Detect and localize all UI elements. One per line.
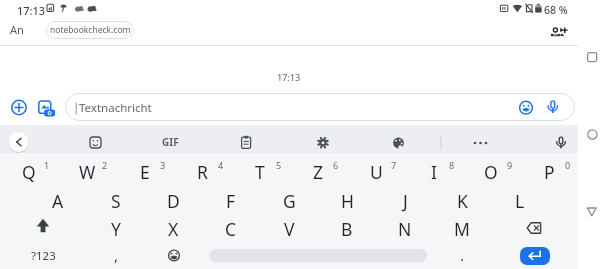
button[interactable]: , xyxy=(101,243,131,267)
staticText: 8 xyxy=(449,159,455,171)
button[interactable]: W xyxy=(59,158,115,185)
staticText: U xyxy=(370,160,383,184)
button[interactable]: C xyxy=(203,215,259,242)
staticText: 68 % xyxy=(544,3,568,17)
button[interactable]: G xyxy=(261,187,317,214)
button[interactable] xyxy=(580,44,606,70)
staticText: K xyxy=(457,189,468,213)
staticText: . xyxy=(460,245,465,265)
button[interactable]: notebookcheck.com xyxy=(46,21,134,39)
staticText: Textnachricht xyxy=(79,100,152,116)
staticText: 17:13 xyxy=(277,71,301,83)
staticText: H xyxy=(341,189,354,213)
button[interactable] xyxy=(540,94,567,121)
button[interactable] xyxy=(549,130,573,154)
button[interactable]: GIF xyxy=(140,131,200,153)
staticText: 3 xyxy=(160,159,166,171)
staticText: R xyxy=(197,160,208,184)
button[interactable] xyxy=(6,94,33,121)
button[interactable]: . xyxy=(447,243,477,267)
staticText: X xyxy=(168,217,179,241)
staticText: Q xyxy=(22,160,36,184)
button[interactable]: J xyxy=(377,187,433,214)
staticText: , xyxy=(114,245,119,265)
button[interactable]: Z xyxy=(290,158,346,185)
button[interactable] xyxy=(520,247,550,265)
staticText: W xyxy=(79,160,96,184)
button[interactable]: I xyxy=(406,158,462,185)
button[interactable]: R xyxy=(174,158,230,185)
staticText: Y xyxy=(111,217,121,241)
staticText: 17:13 xyxy=(17,3,46,18)
button[interactable]: B xyxy=(319,215,375,242)
button[interactable]: S xyxy=(88,187,144,214)
button[interactable] xyxy=(311,130,335,154)
staticText: D xyxy=(167,189,180,213)
button[interactable]: V xyxy=(261,215,317,242)
button[interactable]: ?123 xyxy=(20,244,66,268)
staticText: GIF xyxy=(162,135,179,149)
staticText: V xyxy=(284,217,295,241)
button[interactable]: Y xyxy=(88,215,144,242)
button[interactable]: M xyxy=(434,215,490,242)
staticText: J xyxy=(403,189,408,213)
staticText: 2 xyxy=(102,159,108,171)
staticText: L xyxy=(515,189,525,213)
staticText: 7 xyxy=(391,159,397,171)
staticText: notebookcheck.com xyxy=(50,24,131,36)
staticText: F xyxy=(226,189,236,213)
button[interactable]: L xyxy=(492,187,548,214)
button[interactable] xyxy=(387,130,411,154)
button[interactable] xyxy=(32,94,59,121)
staticText: 9 xyxy=(507,159,513,171)
button[interactable] xyxy=(65,93,575,121)
button[interactable] xyxy=(511,214,557,241)
button[interactable] xyxy=(234,130,258,154)
button[interactable]: K xyxy=(434,187,490,214)
button[interactable]: Q xyxy=(1,158,57,185)
staticText: I xyxy=(431,160,437,184)
staticText: ?123 xyxy=(31,248,56,264)
staticText: 0 xyxy=(565,159,571,171)
button[interactable] xyxy=(6,130,31,154)
staticText: M xyxy=(454,217,470,241)
button[interactable]: X xyxy=(145,215,201,242)
button[interactable] xyxy=(580,199,606,225)
button[interactable]: D xyxy=(145,187,201,214)
staticText: E xyxy=(140,160,150,184)
button[interactable]: E xyxy=(117,158,173,185)
staticText: O xyxy=(484,160,498,184)
button[interactable]: O xyxy=(463,158,519,185)
staticText: Z xyxy=(313,160,324,184)
button[interactable]: F xyxy=(203,187,259,214)
button[interactable] xyxy=(580,122,606,148)
button[interactable]: P xyxy=(521,158,577,185)
staticText: 4 xyxy=(218,159,224,171)
button[interactable] xyxy=(512,94,540,121)
staticText: N xyxy=(398,217,412,241)
staticText: An xyxy=(10,22,24,37)
staticText: 6 xyxy=(333,159,339,171)
staticText: S xyxy=(111,189,121,213)
staticText: P xyxy=(544,160,555,184)
button[interactable]: H xyxy=(319,187,375,214)
staticText: A xyxy=(52,189,64,213)
button[interactable] xyxy=(160,242,188,268)
button[interactable]: N xyxy=(377,215,433,242)
button[interactable] xyxy=(84,130,108,154)
button[interactable]: T xyxy=(232,158,288,185)
button[interactable] xyxy=(20,214,66,241)
staticText: G xyxy=(283,189,296,213)
button[interactable]: U xyxy=(348,158,404,185)
button[interactable]: A xyxy=(30,187,86,214)
staticText: C xyxy=(225,217,237,241)
staticText: T xyxy=(255,160,265,184)
button[interactable] xyxy=(469,130,493,154)
staticText: B xyxy=(341,217,353,241)
button[interactable] xyxy=(540,20,576,46)
staticText: 5 xyxy=(276,159,282,171)
staticText: 1 xyxy=(44,159,50,171)
